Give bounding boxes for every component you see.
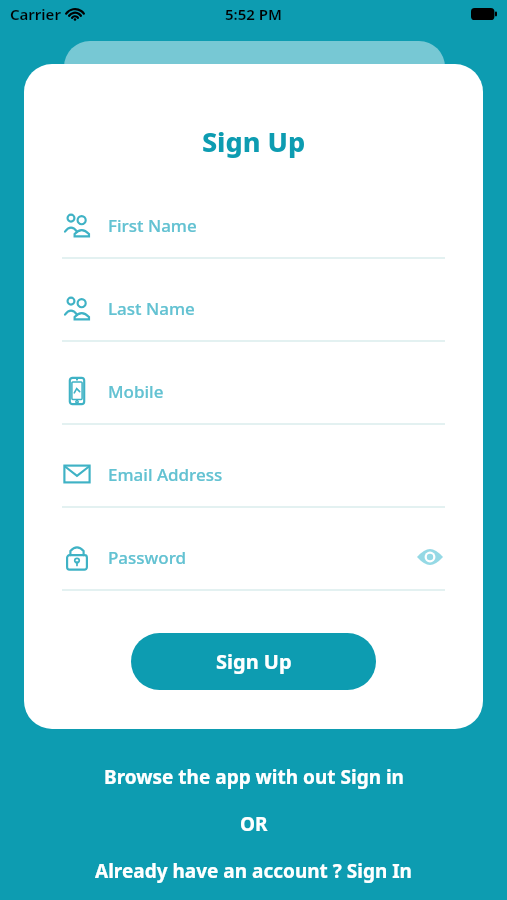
staticText: Mobile	[108, 380, 164, 403]
staticText: Email Address	[108, 463, 223, 486]
button[interactable]: Show password	[415, 542, 445, 572]
staticText: First Name	[108, 214, 197, 237]
button[interactable]: Already have an account ? Sign In	[0, 858, 507, 884]
button[interactable]: Browse the app with out Sign in	[0, 764, 507, 790]
button[interactable]: Last Name	[24, 276, 483, 359]
staticText: OR	[240, 811, 268, 837]
staticText: Sign Up	[24, 123, 483, 160]
staticText: Carrier	[10, 4, 61, 24]
staticText: Last Name	[108, 297, 195, 320]
button[interactable]: Sign Up	[131, 633, 376, 690]
staticText: 5:52 PM	[225, 4, 282, 24]
staticText: Browse the app with out Sign in	[104, 764, 404, 790]
button[interactable]: Email Address	[24, 442, 483, 525]
staticText: Password	[108, 546, 187, 569]
button[interactable]: Mobile	[24, 359, 483, 442]
button[interactable]: Password	[24, 525, 483, 608]
button[interactable]: First Name	[24, 193, 483, 276]
staticText: Already have an account ? Sign In	[95, 858, 412, 884]
staticText: Sign Up	[216, 648, 292, 675]
